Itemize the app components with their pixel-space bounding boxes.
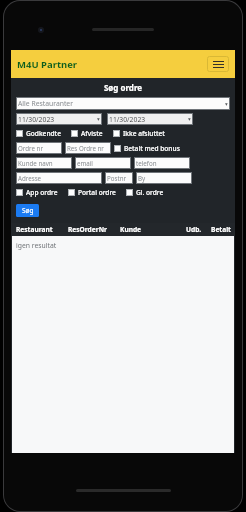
staticText: email (77, 159, 93, 167)
staticText: Ordre nr (18, 144, 43, 152)
staticText: Kunde navn (18, 159, 53, 167)
staticText: Gl. ordre (136, 188, 164, 197)
staticText: telefon (136, 159, 157, 167)
staticText: ▾ (97, 116, 100, 122)
button[interactable]: email (75, 157, 131, 169)
staticText: Res Ordre nr (67, 144, 104, 152)
staticText: ▾ (225, 101, 228, 107)
button[interactable]: Menu (207, 56, 229, 72)
staticText: Udb. (186, 225, 202, 234)
button[interactable]: Betalt med bonus (114, 144, 180, 153)
button[interactable]: 11/30/2023 (107, 113, 193, 125)
staticText: Adresse (18, 174, 42, 182)
staticText: Postnr (107, 174, 127, 182)
button[interactable]: Afviste (71, 129, 103, 138)
staticText: Alle Restauranter (18, 99, 74, 108)
button[interactable]: Ikke afsluttet (113, 129, 165, 138)
staticText: ResOrderNr (68, 225, 107, 234)
staticText: M4U Partner (17, 58, 78, 71)
button[interactable]: Gl. ordre (126, 188, 164, 197)
staticText: App ordre (26, 188, 58, 197)
staticText: Søg ordre (11, 82, 235, 93)
button[interactable]: Godkendte (16, 129, 61, 138)
staticText: Kunde (120, 225, 142, 234)
staticText: 11/30/2023 (109, 115, 146, 124)
button[interactable]: App ordre (16, 188, 58, 197)
button[interactable]: Søg (16, 204, 39, 217)
staticText: Portal ordre (78, 188, 116, 197)
staticText: Godkendte (26, 129, 61, 138)
staticText: By (138, 174, 146, 182)
staticText: igen resultat (16, 241, 57, 250)
button[interactable]: Alle Restauranter (16, 97, 230, 110)
button[interactable]: Postnr (105, 172, 133, 184)
button[interactable]: Portal ordre (68, 188, 116, 197)
staticText: Ikke afsluttet (123, 129, 165, 138)
staticText: ▾ (188, 116, 191, 122)
staticText: Betalt (211, 225, 231, 234)
button[interactable]: Ordre nr (16, 142, 62, 154)
button[interactable]: Res Ordre nr (65, 142, 111, 154)
button[interactable]: 11/30/2023 (16, 113, 102, 125)
button[interactable]: telefon (134, 157, 190, 169)
button[interactable]: Kunde navn (16, 157, 72, 169)
staticText: 11/30/2023 (18, 115, 55, 124)
staticText: Søg (22, 206, 34, 215)
button[interactable]: By (136, 172, 192, 184)
staticText: Betalt med bonus (124, 144, 180, 153)
staticText: Restaurant (16, 225, 53, 234)
staticText: Afviste (81, 129, 103, 138)
button[interactable]: Adresse (16, 172, 102, 184)
